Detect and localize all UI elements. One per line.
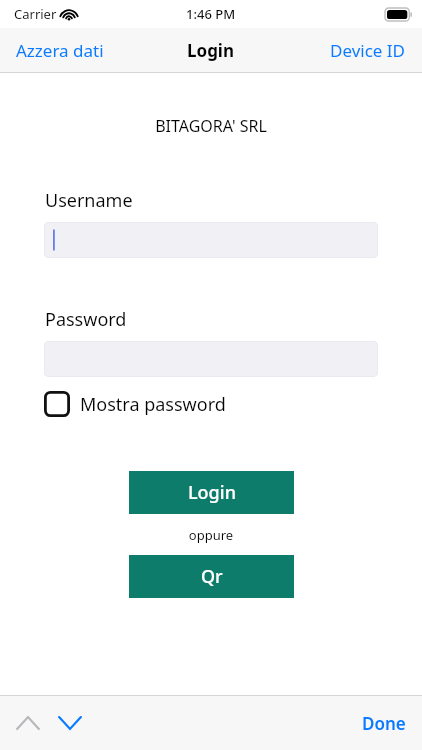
staticText: Qr: [201, 564, 223, 589]
staticText: Done: [362, 712, 406, 735]
staticText: 1:46 PM: [186, 5, 236, 23]
button[interactable]: Done: [346, 702, 422, 745]
staticText: Username: [45, 188, 133, 213]
staticText: oppure: [0, 526, 422, 544]
button[interactable]: [44, 222, 378, 258]
staticText: Carrier: [14, 5, 57, 23]
staticText: Azzera dati: [16, 39, 104, 62]
button[interactable]: Qr: [129, 555, 294, 598]
button[interactable]: Azzera dati: [0, 31, 120, 70]
button[interactable]: Mostra password: [44, 387, 234, 421]
staticText: Password: [45, 307, 127, 332]
button[interactable]: Next field: [50, 703, 90, 743]
staticText: Mostra password: [80, 392, 226, 417]
button[interactable]: Login: [129, 471, 294, 514]
button[interactable]: Previous field: [8, 703, 48, 743]
staticText: Login: [187, 39, 235, 62]
staticText: BITAGORA' SRL: [0, 115, 422, 137]
button[interactable]: Device ID: [314, 31, 422, 70]
staticText: Device ID: [330, 39, 406, 62]
staticText: Login: [188, 480, 236, 505]
